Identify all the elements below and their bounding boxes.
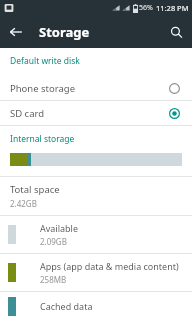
staticText: Storage	[39, 23, 90, 41]
staticText: 56%	[139, 3, 153, 13]
staticText: Phone storage	[10, 82, 76, 95]
staticText: 258MB	[40, 274, 67, 285]
button[interactable]: Cached data	[0, 292, 192, 320]
staticText: Total space	[10, 183, 60, 196]
staticText: SD card	[10, 107, 45, 120]
staticText: Default write disk	[10, 55, 80, 67]
button[interactable]: Search	[160, 16, 192, 48]
staticText: 2.42GB	[10, 198, 37, 209]
button[interactable]: Phone storage	[0, 76, 192, 100]
button[interactable]: SD card	[0, 101, 192, 125]
button[interactable]: Apps (app data & media content)	[0, 254, 192, 291]
staticText: Cached data	[40, 300, 93, 312]
staticText: Apps (app data & media content)	[40, 260, 179, 272]
staticText: Internal storage	[10, 133, 75, 145]
staticText: 11:28 PM	[156, 3, 189, 13]
staticText: Available	[40, 222, 78, 234]
button[interactable]: Total space	[0, 177, 192, 215]
button[interactable]: Navigate up	[0, 16, 32, 48]
button[interactable]: Available	[0, 216, 192, 253]
staticText: 2.09GB	[40, 236, 67, 247]
